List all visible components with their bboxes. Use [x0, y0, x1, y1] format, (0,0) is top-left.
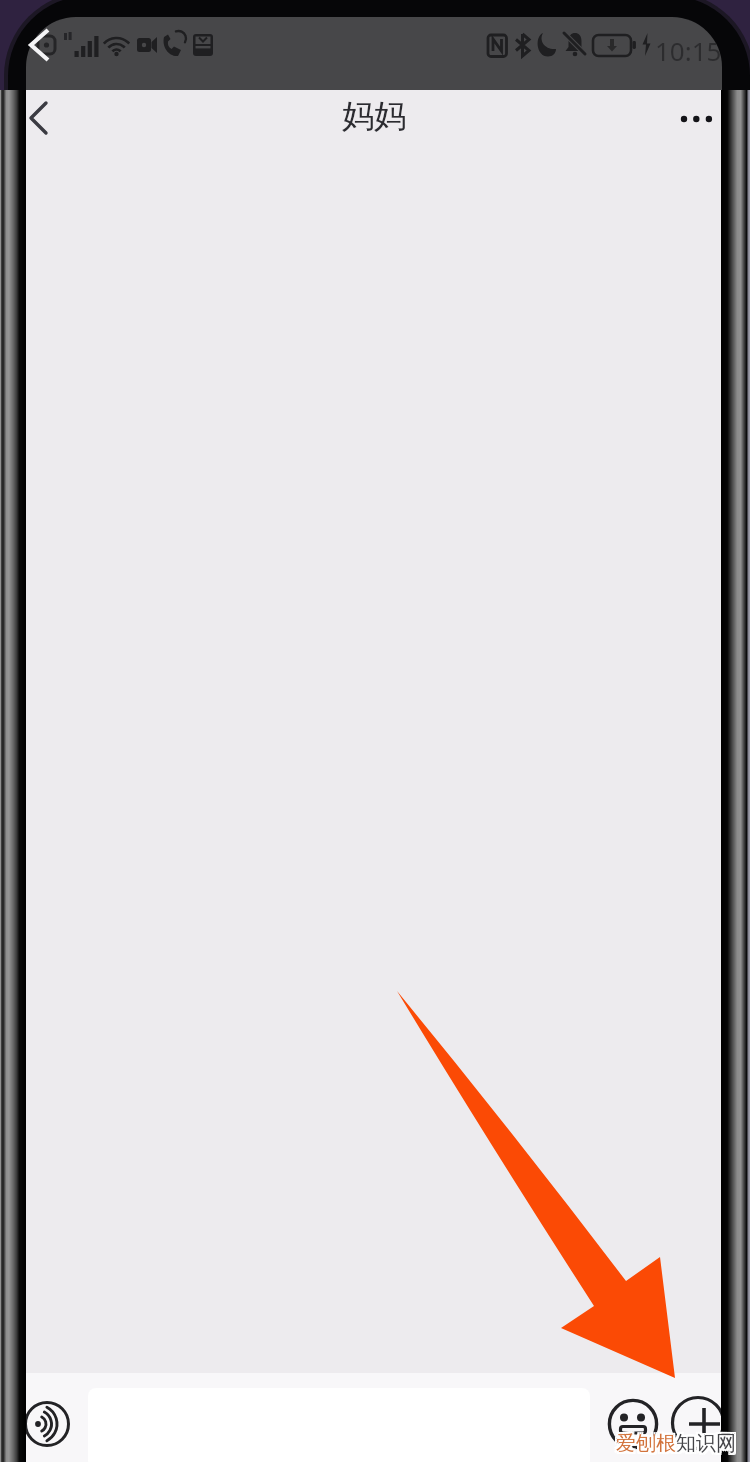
- staticText: 爱刨根知识网: [616, 1433, 736, 1458]
- staticText: 爱刨根知识网: [618, 1433, 738, 1458]
- staticText: 爱刨根知识网: [614, 1433, 734, 1458]
- button[interactable]: More: [671, 1396, 722, 1450]
- staticText: 爱刨根知识网: [618, 1429, 738, 1454]
- button[interactable]: Voice message: [26, 1398, 73, 1450]
- staticText: 爱刨根知识网: [614, 1429, 734, 1454]
- staticText: 妈妈: [342, 96, 406, 136]
- button[interactable]: More options: [672, 95, 722, 151]
- staticText: 爱刨根知识网: [614, 1431, 734, 1456]
- button[interactable]: Back: [26, 86, 88, 152]
- staticText: 知识网: [676, 1431, 736, 1456]
- staticText: 爱刨根: [616, 1431, 676, 1456]
- button[interactable]: Emoji: [606, 1397, 660, 1451]
- staticText: 爱刨根知识网: [618, 1431, 738, 1456]
- staticText: 10:15: [655, 33, 722, 68]
- staticText: 爱刨根知识网: [616, 1429, 736, 1454]
